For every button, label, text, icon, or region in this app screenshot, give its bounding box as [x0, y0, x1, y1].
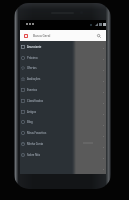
staticText: Meus Favoritos	[27, 131, 47, 135]
button[interactable]: Blog	[20, 117, 72, 127]
button[interactable]: Meus Favoritos	[20, 128, 72, 138]
staticText: Eventos	[27, 88, 37, 92]
button[interactable]: Open navigation drawer	[21, 31, 30, 40]
button[interactable]: Artigos	[20, 107, 72, 117]
button[interactable]: Próximo	[20, 53, 72, 63]
staticText: Sobre Nós	[27, 153, 40, 157]
staticText: Avaliações	[27, 77, 41, 81]
staticText: Classificados	[27, 99, 44, 103]
staticText: Anunciante	[27, 45, 42, 49]
button[interactable]: Minha Conta	[20, 139, 72, 149]
staticText: Próximo	[27, 56, 38, 60]
button[interactable]: Anunciante	[20, 42, 72, 52]
staticText: Minha Conta	[27, 142, 44, 146]
staticText: Artigos	[27, 110, 37, 114]
button[interactable]: Avaliações	[20, 74, 72, 84]
staticText: Blog	[27, 120, 33, 124]
button[interactable]: Search	[94, 31, 104, 41]
button[interactable]: Eventos	[20, 85, 72, 95]
button[interactable]: Classificados	[20, 96, 72, 106]
button[interactable]: Sobre Nós	[20, 150, 72, 160]
button[interactable]: Ofertas	[20, 63, 72, 73]
staticText: Busca Geral	[33, 34, 51, 38]
staticText: Ofertas	[27, 66, 37, 70]
